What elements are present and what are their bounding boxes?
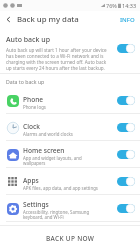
staticText: Auto back up bbox=[6, 35, 50, 45]
button[interactable]: Auto back up bbox=[0, 28, 140, 73]
button[interactable]: Navigate up bbox=[0, 11, 17, 28]
staticText: Data to back up bbox=[6, 78, 45, 85]
staticText: App and widget layouts, and wallpapers bbox=[23, 155, 82, 167]
staticText: 14:33 bbox=[122, 2, 137, 9]
staticText: Auto back up will start 1 hour after you… bbox=[6, 47, 111, 71]
staticText: Accessibility, ringtone, Samsung keyboar… bbox=[23, 209, 90, 221]
staticText: Settings bbox=[23, 200, 49, 209]
staticText: Home screen bbox=[23, 146, 65, 155]
button[interactable]: Phone bbox=[0, 87, 140, 114]
staticText: BACK UP NOW bbox=[46, 234, 95, 243]
button[interactable]: Settings bbox=[0, 195, 140, 222]
staticText: INFO bbox=[120, 16, 135, 24]
staticText: Alarms and world clocks bbox=[23, 131, 73, 137]
staticText: Phone logs bbox=[23, 104, 46, 110]
staticText: 76% bbox=[106, 2, 117, 9]
staticText: Phone bbox=[23, 95, 44, 104]
staticText: Back up my data bbox=[17, 14, 79, 25]
button[interactable]: BACK UP NOW bbox=[0, 226, 140, 250]
button[interactable]: Apps bbox=[0, 168, 140, 195]
button[interactable]: INFO bbox=[115, 12, 140, 28]
staticText: Clock bbox=[23, 122, 40, 131]
staticText: Apps bbox=[23, 176, 39, 185]
button[interactable]: Home screen bbox=[0, 141, 140, 168]
staticText: APK files, app data, and app settings bbox=[23, 185, 98, 191]
button[interactable]: Clock bbox=[0, 114, 140, 141]
